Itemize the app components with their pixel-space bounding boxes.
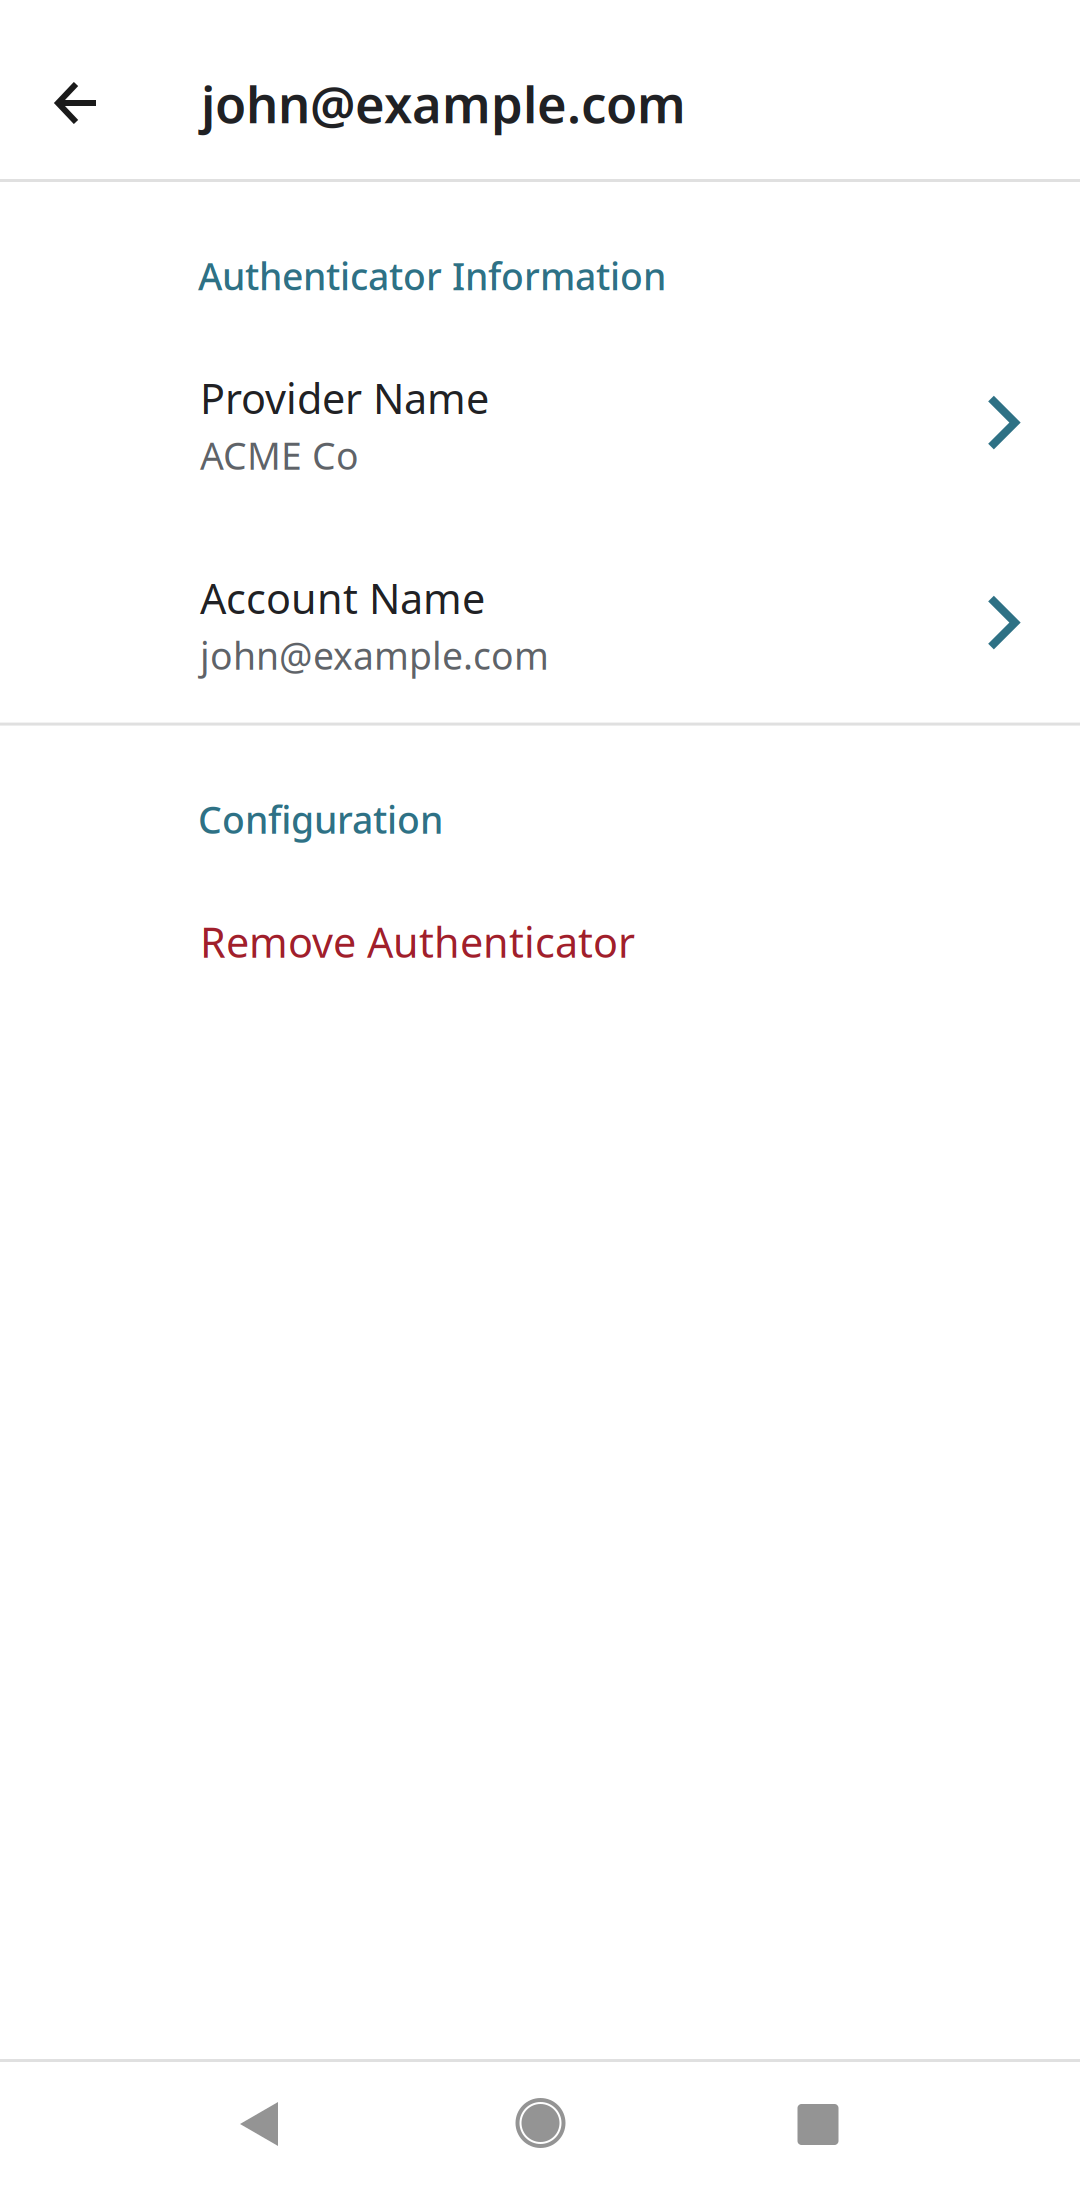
button[interactable]: Provider Name <box>0 323 1080 523</box>
staticText: Account Name <box>200 571 485 625</box>
staticText: ACME Co <box>200 430 359 480</box>
staticText: Provider Name <box>200 371 489 425</box>
button[interactable]: Navigate up <box>0 0 154 179</box>
button[interactable]: Account Name <box>0 523 1080 723</box>
button[interactable]: Back <box>121 2062 397 2190</box>
staticText: john@example.com <box>201 70 686 137</box>
staticText: Authenticator Information <box>198 251 666 301</box>
button[interactable]: Remove Authenticator <box>0 844 1080 1021</box>
button[interactable]: Home <box>397 2064 680 2188</box>
staticText: Configuration <box>198 795 443 844</box>
staticText: Remove Authenticator <box>200 914 635 969</box>
button[interactable]: Recent apps <box>680 2062 956 2190</box>
staticText: john@example.com <box>200 630 549 680</box>
